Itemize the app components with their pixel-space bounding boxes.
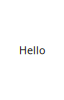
staticText: Hello bbox=[19, 43, 45, 57]
